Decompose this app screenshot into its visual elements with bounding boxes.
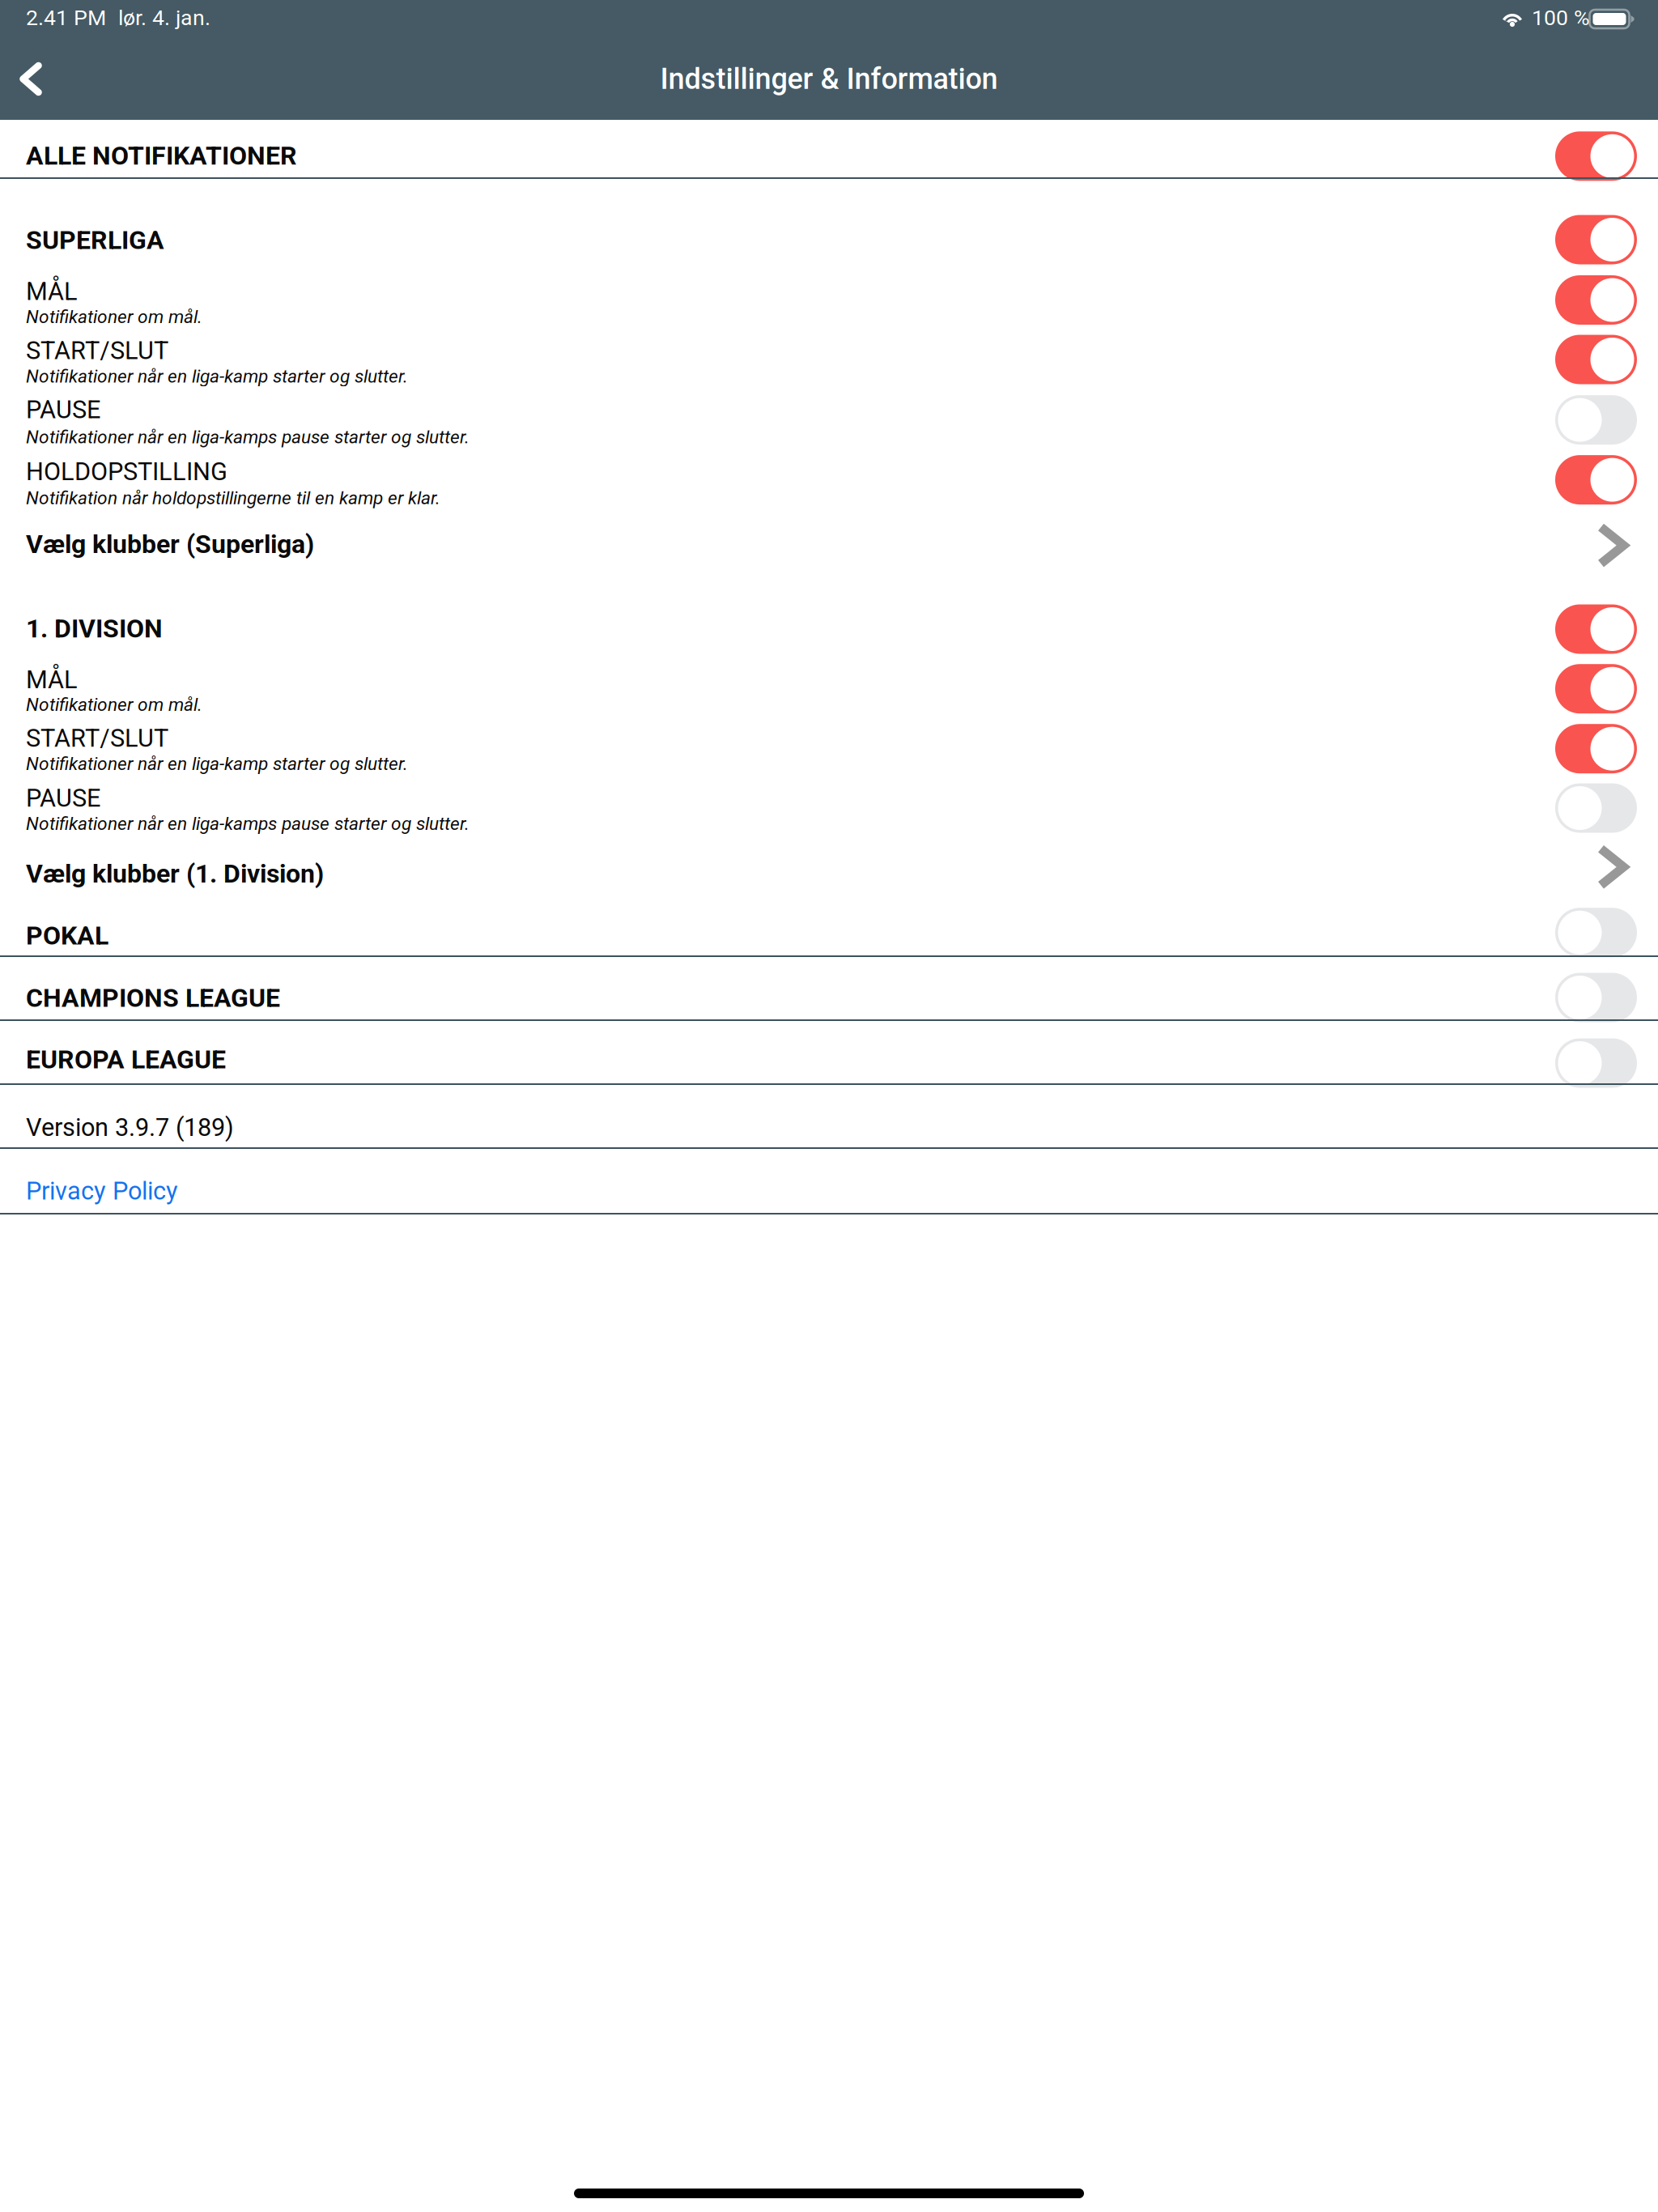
button[interactable]: On [0, 120, 1658, 178]
staticText: Notifikationer når en liga-kamp starter … [26, 753, 408, 774]
staticText: Notifikation når holdopstillingerne til … [26, 487, 440, 509]
staticText: START/SLUT [26, 336, 168, 365]
button[interactable]: Off [0, 901, 1658, 956]
staticText: MÅL [26, 277, 78, 306]
staticText: 100 % [1532, 5, 1590, 30]
button[interactable]: Off [0, 390, 1658, 450]
staticText: EUROPA LEAGUE [26, 1044, 226, 1075]
button[interactable]: Off [0, 778, 1658, 839]
button[interactable]: On [0, 180, 1658, 270]
button[interactable]: On [0, 330, 1658, 390]
staticText: HOLDOPSTILLING [26, 457, 227, 486]
staticText: Notifikationer om mål. [26, 306, 202, 328]
button[interactable]: On [0, 450, 1658, 513]
button[interactable]: Back [0, 42, 74, 116]
staticText: 1. DIVISION [26, 613, 163, 644]
button[interactable]: On [0, 719, 1658, 778]
staticText: Notifikationer når en liga-kamp starter … [26, 365, 408, 387]
staticText: Indstillinger & Information [660, 62, 998, 96]
staticText: SUPERLIGA [26, 225, 164, 255]
button[interactable]: Vælg klubber (Superliga) [0, 513, 1658, 580]
staticText: Vælg klubber (Superliga) [26, 529, 314, 559]
staticText: Privacy Policy [26, 1177, 178, 1206]
button[interactable]: Off [0, 958, 1658, 1020]
staticText: POKAL [26, 920, 108, 951]
staticText: PAUSE [26, 395, 100, 424]
staticText: CHAMPIONS LEAGUE [26, 983, 280, 1013]
button[interactable]: Privacy Policy [0, 1150, 1658, 1214]
button[interactable]: On [0, 270, 1658, 330]
staticText: Version 3.9.7 (189) [26, 1113, 234, 1142]
staticText: Notifikationer når en liga-kamps pause s… [26, 426, 470, 448]
staticText: PAUSE [26, 784, 100, 813]
button[interactable]: On [0, 580, 1658, 659]
staticText: Vælg klubber (1. Division) [26, 858, 324, 889]
staticText: Notifikationer når en liga-kamps pause s… [26, 813, 470, 834]
button[interactable]: Version 3.9.7 (189) [0, 1086, 1658, 1148]
button[interactable]: Vælg klubber (1. Division) [0, 839, 1658, 901]
button[interactable]: Off [0, 1022, 1658, 1084]
staticText: START/SLUT [26, 724, 168, 753]
button[interactable]: On [0, 659, 1658, 719]
staticText: ALLE NOTIFIKATIONER [26, 141, 297, 171]
staticText: lør. 4. jan. [118, 5, 210, 30]
staticText: 2.41 PM [26, 5, 106, 30]
staticText: Notifikationer om mål. [26, 694, 202, 715]
staticText: MÅL [26, 665, 78, 694]
